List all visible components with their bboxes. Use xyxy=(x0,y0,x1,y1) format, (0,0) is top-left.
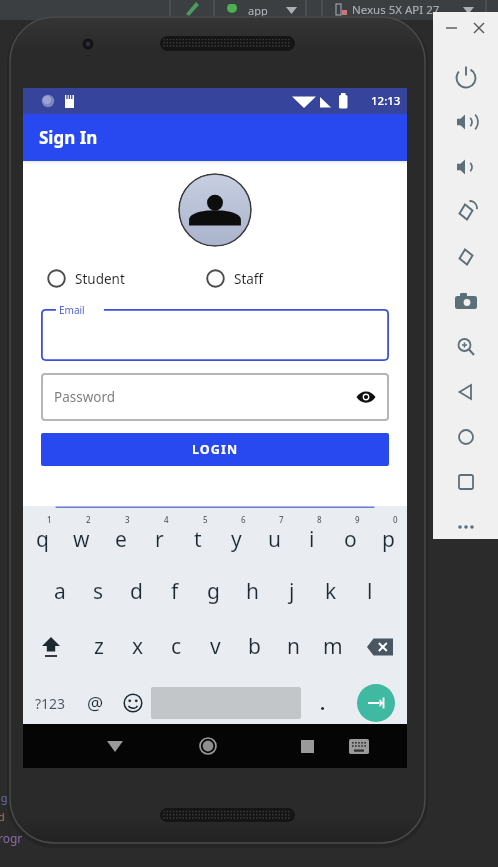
staticText: 7 xyxy=(279,514,284,525)
button[interactable]: b xyxy=(235,619,274,674)
button[interactable]: g xyxy=(194,564,233,619)
button[interactable]: s xyxy=(79,564,117,619)
button[interactable]: @ xyxy=(77,674,114,732)
staticText: w xyxy=(73,525,90,554)
button[interactable]: a xyxy=(41,564,79,619)
button[interactable]: x xyxy=(118,619,157,674)
button[interactable]: Email xyxy=(41,309,389,361)
button[interactable]: Home xyxy=(449,420,483,454)
button[interactable]: More xyxy=(449,510,483,544)
button[interactable]: 4 xyxy=(140,509,179,564)
staticText: Student xyxy=(75,270,125,288)
button[interactable]: Home xyxy=(182,724,234,768)
staticText: o xyxy=(344,525,357,554)
button[interactable]: Volume down xyxy=(449,150,483,184)
staticText: 5 xyxy=(203,514,208,525)
staticText: ?123 xyxy=(35,694,66,713)
button[interactable]: m xyxy=(313,619,352,674)
staticText: j xyxy=(289,577,295,606)
button[interactable]: h xyxy=(233,564,272,619)
staticText: 2 xyxy=(86,514,91,525)
staticText: 9 xyxy=(355,514,360,525)
button[interactable]: d xyxy=(117,564,155,619)
button[interactable]: Show password xyxy=(353,384,379,410)
staticText: m xyxy=(323,632,343,661)
button[interactable]: Staff xyxy=(204,265,266,292)
button[interactable]: Zoom xyxy=(449,330,483,364)
button[interactable]: 5 xyxy=(179,509,217,564)
staticText: a xyxy=(54,577,66,606)
staticText: d xyxy=(130,577,143,606)
staticText: f xyxy=(171,577,179,606)
staticText: t xyxy=(194,525,202,554)
button[interactable]: k xyxy=(311,564,350,619)
button[interactable]: Shift xyxy=(23,619,79,674)
button[interactable]: v xyxy=(196,619,235,674)
staticText: 6 xyxy=(241,514,246,525)
staticText: h xyxy=(246,577,259,606)
staticText: x xyxy=(132,632,144,661)
button[interactable]: Enter xyxy=(345,674,407,732)
button[interactable]: l xyxy=(350,564,389,619)
staticText: b xyxy=(248,632,261,661)
button[interactable]: 8 xyxy=(293,509,331,564)
staticText: r xyxy=(155,525,164,554)
button[interactable]: Profile picture xyxy=(178,173,252,247)
staticText: z xyxy=(94,632,104,661)
button[interactable]: f xyxy=(155,564,194,619)
staticText: 8 xyxy=(317,514,322,525)
staticText: k xyxy=(325,577,337,606)
staticText: Sign In xyxy=(39,126,98,149)
staticText: LOGIN xyxy=(192,441,239,458)
button[interactable]: c xyxy=(157,619,196,674)
button[interactable]: . xyxy=(301,674,345,732)
button[interactable]: 1 xyxy=(23,509,62,564)
button[interactable]: Back xyxy=(449,375,483,409)
staticText: l xyxy=(367,577,373,606)
button[interactable]: 7 xyxy=(255,509,293,564)
button[interactable]: Rotate left xyxy=(449,195,483,229)
button[interactable]: Student xyxy=(45,265,127,292)
staticText: i xyxy=(309,525,315,554)
staticText: Staff xyxy=(234,270,264,288)
button[interactable]: Minimize xyxy=(442,19,460,37)
staticText: Password xyxy=(54,388,116,406)
staticText: Nexus 5X API 27 xyxy=(352,2,440,18)
staticText: q xyxy=(36,525,49,554)
staticText: u xyxy=(268,525,281,554)
button[interactable]: Volume up xyxy=(449,105,483,139)
button[interactable]: 3 xyxy=(101,509,140,564)
button[interactable]: Take screenshot xyxy=(449,285,483,319)
button[interactable]: j xyxy=(272,564,311,619)
button[interactable]: 0 xyxy=(369,509,407,564)
button[interactable]: Power xyxy=(449,60,483,94)
button[interactable]: z xyxy=(79,619,118,674)
button[interactable]: Rotate right xyxy=(449,240,483,274)
staticText: n xyxy=(287,632,300,661)
staticText: 3 xyxy=(125,514,130,525)
button[interactable]: Backspace xyxy=(352,619,407,674)
button[interactable]: 9 xyxy=(331,509,369,564)
button[interactable]: Recent apps xyxy=(281,724,333,768)
button[interactable]: Sign In xyxy=(23,114,407,161)
staticText: 12:13 xyxy=(371,93,401,109)
staticText: 1 xyxy=(47,514,52,525)
button[interactable]: Switch keyboard xyxy=(333,724,385,768)
staticText: rogr xyxy=(0,830,23,846)
button[interactable]: 2 xyxy=(62,509,101,564)
button[interactable]: LOGIN xyxy=(41,433,389,466)
staticText: app xyxy=(248,3,268,18)
button[interactable]: Back xyxy=(89,724,141,768)
button[interactable]: Emoji xyxy=(114,674,151,732)
button[interactable]: 6 xyxy=(217,509,255,564)
staticText: Email xyxy=(59,303,85,317)
staticText: . xyxy=(320,691,326,716)
button[interactable]: ?123 xyxy=(23,674,77,732)
staticText: 4 xyxy=(164,514,169,525)
button[interactable]: Close xyxy=(470,19,488,37)
button[interactable]: n xyxy=(274,619,313,674)
button[interactable]: Password xyxy=(41,373,389,421)
staticText: s xyxy=(93,577,104,606)
button[interactable]: Overview xyxy=(449,465,483,499)
